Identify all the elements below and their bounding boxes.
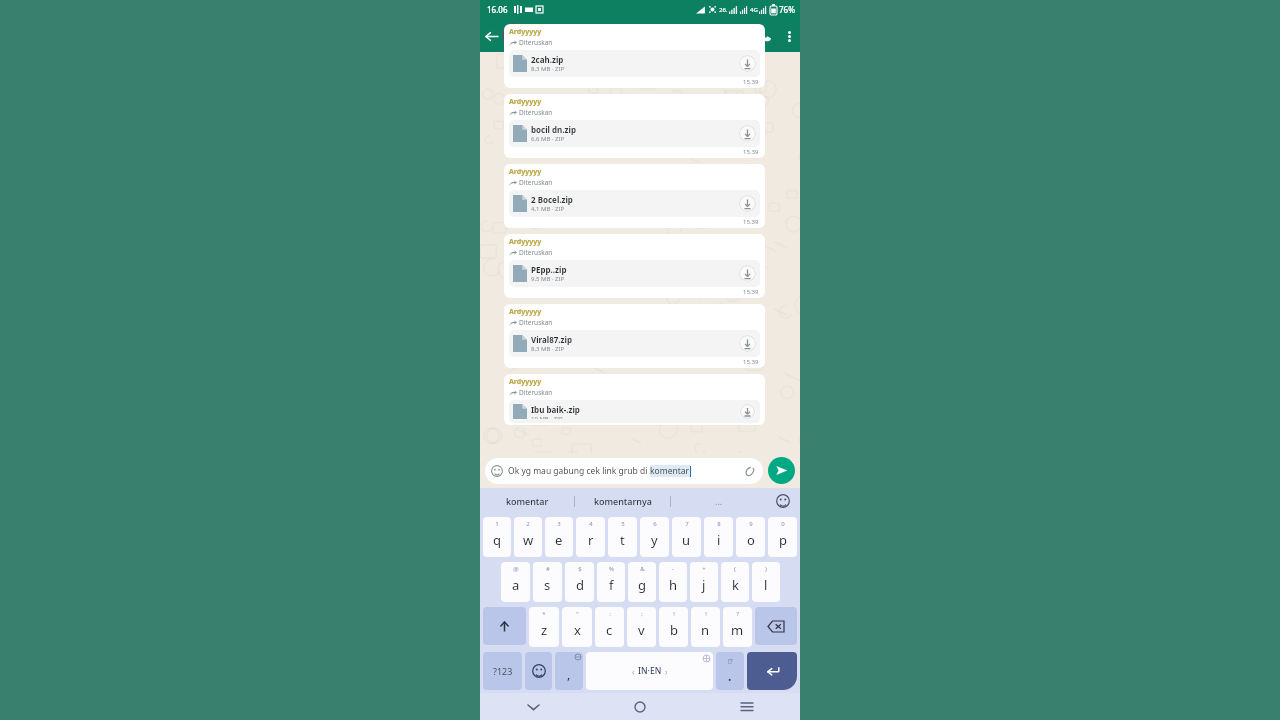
button[interactable]: & (628, 562, 656, 602)
button[interactable]: PEpp..zip (509, 260, 760, 287)
button[interactable]: Download (739, 335, 756, 352)
staticText: b (670, 621, 678, 639)
button[interactable]: 1 (483, 517, 511, 557)
button[interactable]: !? (716, 652, 744, 690)
button[interactable]: 2 (514, 517, 542, 557)
button[interactable]: 9 (736, 517, 765, 557)
staticText: g (638, 576, 646, 594)
button[interactable]: 7 (672, 517, 701, 557)
button[interactable]: 8 (704, 517, 733, 557)
button[interactable]: " (562, 607, 592, 647)
staticText: s (544, 576, 551, 594)
staticText: 76% (779, 4, 795, 15)
staticText: e (555, 531, 563, 549)
button[interactable]: : (595, 607, 624, 647)
button[interactable]: komentarnya (575, 488, 670, 514)
button[interactable]: Ardyyyyy (504, 304, 765, 368)
button[interactable]: Ardyyyyy (504, 94, 765, 158)
staticText: 6,6 MB · ZIP (531, 135, 565, 143)
button[interactable]: ? (723, 607, 752, 647)
staticText: komentar (506, 495, 549, 507)
button[interactable]: Download (739, 125, 756, 142)
staticText: Ardyyyyy (509, 237, 542, 247)
staticText: 1 (495, 520, 499, 528)
staticText: 15.39 (743, 78, 759, 86)
staticText: 5 (621, 520, 625, 528)
button[interactable]: $ (565, 562, 594, 602)
button[interactable]: ! (691, 607, 720, 647)
button[interactable]: - (659, 562, 687, 602)
button[interactable]: Back (480, 25, 502, 47)
button[interactable]: 0 (768, 517, 797, 557)
staticText: ( (734, 565, 736, 573)
button[interactable]: Emoji (766, 488, 800, 514)
button[interactable]: Ardyyyyy (504, 234, 765, 298)
button[interactable]: # (533, 562, 562, 602)
staticText: ... (715, 495, 723, 507)
staticText: $ (578, 565, 582, 573)
staticText: Ardyyyyy (509, 307, 542, 317)
staticText: 26. (719, 6, 728, 14)
button[interactable]: ; (627, 607, 656, 647)
button[interactable]: ( (721, 562, 749, 602)
staticText: , (567, 666, 571, 682)
button[interactable]: 2cah.zip (509, 50, 760, 77)
button[interactable]: Ardyyyyy (504, 164, 765, 228)
staticText: 4G (750, 6, 758, 14)
staticText: Ardyyyyy (509, 167, 542, 177)
button[interactable]: Recents (693, 693, 800, 720)
button[interactable]: Video call (728, 23, 754, 49)
button[interactable]: Ok yg mau gabung cek link grub di (485, 458, 763, 484)
button[interactable]: + (690, 562, 718, 602)
button[interactable]: Hide keyboard (480, 693, 586, 720)
button[interactable]: Download (739, 55, 756, 72)
staticText: 3 (557, 520, 561, 528)
staticText: @ (513, 565, 519, 573)
button[interactable]: 3 (545, 517, 573, 557)
button[interactable]: Home (586, 693, 693, 720)
button[interactable]: Symbols (483, 652, 522, 690)
button[interactable]: * (529, 607, 559, 647)
button[interactable]: Group photo (502, 23, 527, 48)
button[interactable]: Backspace (755, 607, 797, 645)
button[interactable]: Call (754, 24, 778, 48)
button[interactable]: 6 (640, 517, 669, 557)
button[interactable]: Space (586, 652, 713, 690)
button[interactable]: Send (768, 457, 795, 484)
staticText: q (493, 531, 501, 549)
staticText: 7 (685, 520, 689, 528)
button[interactable]: Download (739, 404, 756, 419)
button[interactable]: ) (752, 562, 780, 602)
button[interactable]: Emoji (525, 652, 552, 690)
button[interactable]: Ardyyyyy (504, 374, 765, 425)
staticText: u (682, 531, 691, 549)
button[interactable]: ! (659, 607, 688, 647)
button[interactable]: komentar (480, 488, 574, 514)
staticText: Ardyyyyy (509, 377, 542, 387)
button[interactable]: Shift (483, 607, 526, 645)
button[interactable]: % (597, 562, 625, 602)
button[interactable]: More options (778, 25, 800, 47)
button[interactable]: Ardyyyyy (504, 24, 765, 88)
button[interactable]: Download (739, 195, 756, 212)
staticText: k (732, 576, 739, 594)
button[interactable]: 5 (608, 517, 637, 557)
staticText: Diteruskan (519, 38, 553, 47)
button[interactable]: @ (501, 562, 530, 602)
button[interactable]: Viral87.zip (509, 330, 760, 357)
button[interactable]: 4 (576, 517, 605, 557)
staticText: " (576, 610, 579, 618)
button[interactable]: Enter (747, 652, 797, 690)
button[interactable]: , (555, 652, 583, 690)
button[interactable]: bocil dn.zip (509, 120, 760, 147)
staticText: PEpp..zip (531, 264, 567, 275)
staticText: Viral87.zip (531, 334, 572, 345)
button[interactable]: Attach (744, 465, 757, 478)
button[interactable]: 2 Bocel.zip (509, 190, 760, 217)
button[interactable]: Download (739, 265, 756, 282)
staticText: o (747, 531, 755, 549)
staticText: v (638, 621, 645, 639)
staticText: w (523, 531, 534, 549)
button[interactable]: Ibu baik-.zip (509, 400, 760, 423)
